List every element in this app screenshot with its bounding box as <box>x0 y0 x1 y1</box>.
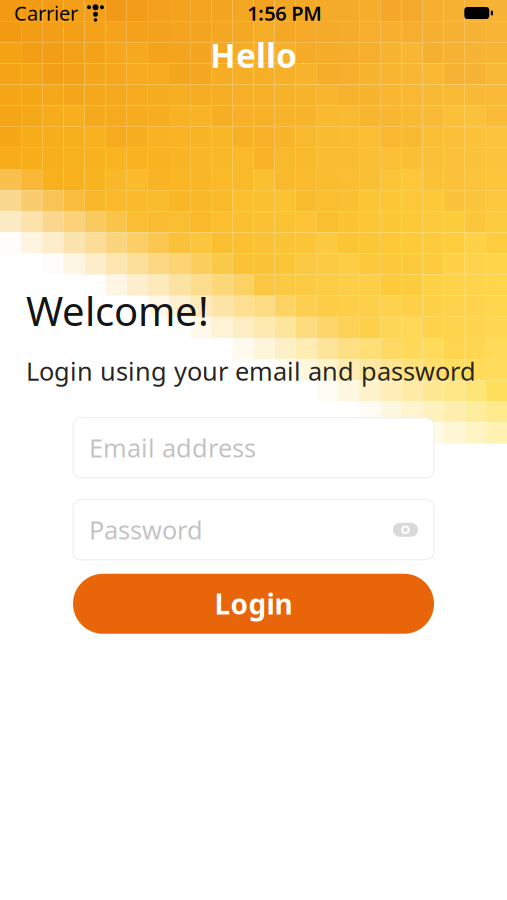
staticText: 1:56 PM <box>247 0 322 26</box>
button[interactable]: Email address <box>73 418 434 478</box>
button[interactable]: Login <box>73 574 434 634</box>
button[interactable]: Password <box>73 500 434 560</box>
staticText: Login <box>214 585 292 622</box>
staticText: Login using your email and password <box>26 354 476 388</box>
staticText: Carrier <box>14 0 78 26</box>
staticText: Password <box>89 513 203 546</box>
staticText: Email address <box>89 431 256 464</box>
staticText: Hello <box>210 33 297 77</box>
staticText: Welcome! <box>26 284 209 337</box>
